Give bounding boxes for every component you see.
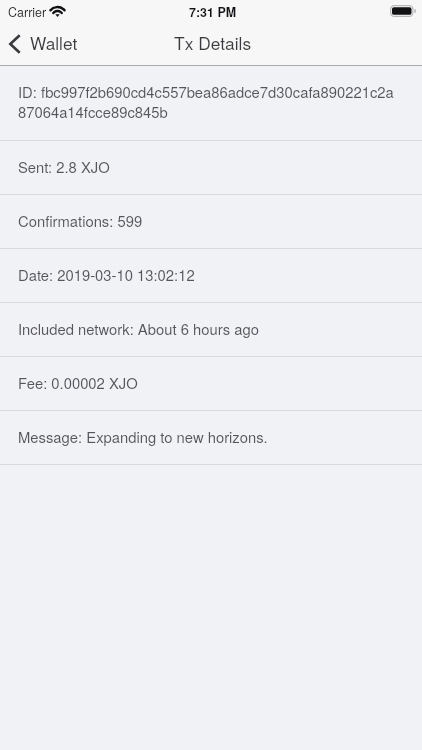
button[interactable]: ID: fbc997f2b690cd4c557bea86adce7d30cafa…: [0, 66, 422, 141]
staticText: 7:31 PM: [189, 3, 237, 21]
button[interactable]: Message: Expanding to new horizons.: [0, 411, 422, 465]
other: Wi-Fi signal: [50, 6, 65, 17]
button[interactable]: Included network: About 6 hours ago: [0, 303, 422, 357]
button[interactable]: Confirmations: 599: [0, 195, 422, 249]
staticText: ID: fbc997f2b690cd4c557bea86adce7d30cafa…: [18, 81, 402, 122]
button[interactable]: Date: 2019-03-10 13:02:12: [0, 249, 422, 303]
staticText: Wallet: [30, 30, 78, 55]
staticText: Fee: 0.00002 XJO: [18, 372, 138, 393]
other: Back: [9, 34, 21, 54]
button[interactable]: Fee: 0.00002 XJO: [0, 357, 422, 411]
other: Battery full: [390, 5, 416, 17]
staticText: Sent: 2.8 XJO: [18, 156, 110, 177]
staticText: Date: 2019-03-10 13:02:12: [18, 264, 195, 285]
staticText: Confirmations: 599: [18, 210, 143, 231]
button[interactable]: Sent: 2.8 XJO: [0, 141, 422, 195]
staticText: Carrier: [8, 3, 47, 21]
staticText: Tx Details: [174, 30, 252, 55]
staticText: Message: Expanding to new horizons.: [18, 426, 268, 447]
staticText: Included network: About 6 hours ago: [18, 318, 259, 339]
button[interactable]: Back: [0, 21, 84, 66]
